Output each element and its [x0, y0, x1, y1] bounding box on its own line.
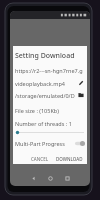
staticText: Setting Download	[15, 51, 75, 61]
button[interactable]: Home	[46, 174, 55, 183]
button[interactable]: Choose folder	[77, 91, 85, 99]
staticText: Number of threads : 1	[15, 120, 72, 127]
button[interactable]: Back	[29, 174, 38, 183]
button[interactable]: CANCEL	[29, 154, 51, 164]
button[interactable]: Threads slider	[15, 129, 85, 136]
staticText: CANCEL	[31, 156, 49, 162]
button[interactable]: DOWNLOAD	[54, 154, 85, 164]
staticText: videoplayback.mp4	[15, 80, 77, 87]
button[interactable]: Recents	[63, 174, 72, 183]
staticText: DOWNLOAD	[56, 156, 83, 162]
staticText: /storage/emulated/0/D	[15, 92, 77, 99]
staticText: https://r2---sn-hgn7rne7.g	[15, 67, 83, 74]
button[interactable]: Edit file name	[77, 79, 85, 87]
staticText: File size : (105Kb)	[15, 107, 59, 114]
button[interactable]: Multi-Part Progress toggle	[75, 140, 85, 147]
staticText: Multi-Part Progress	[15, 140, 75, 147]
